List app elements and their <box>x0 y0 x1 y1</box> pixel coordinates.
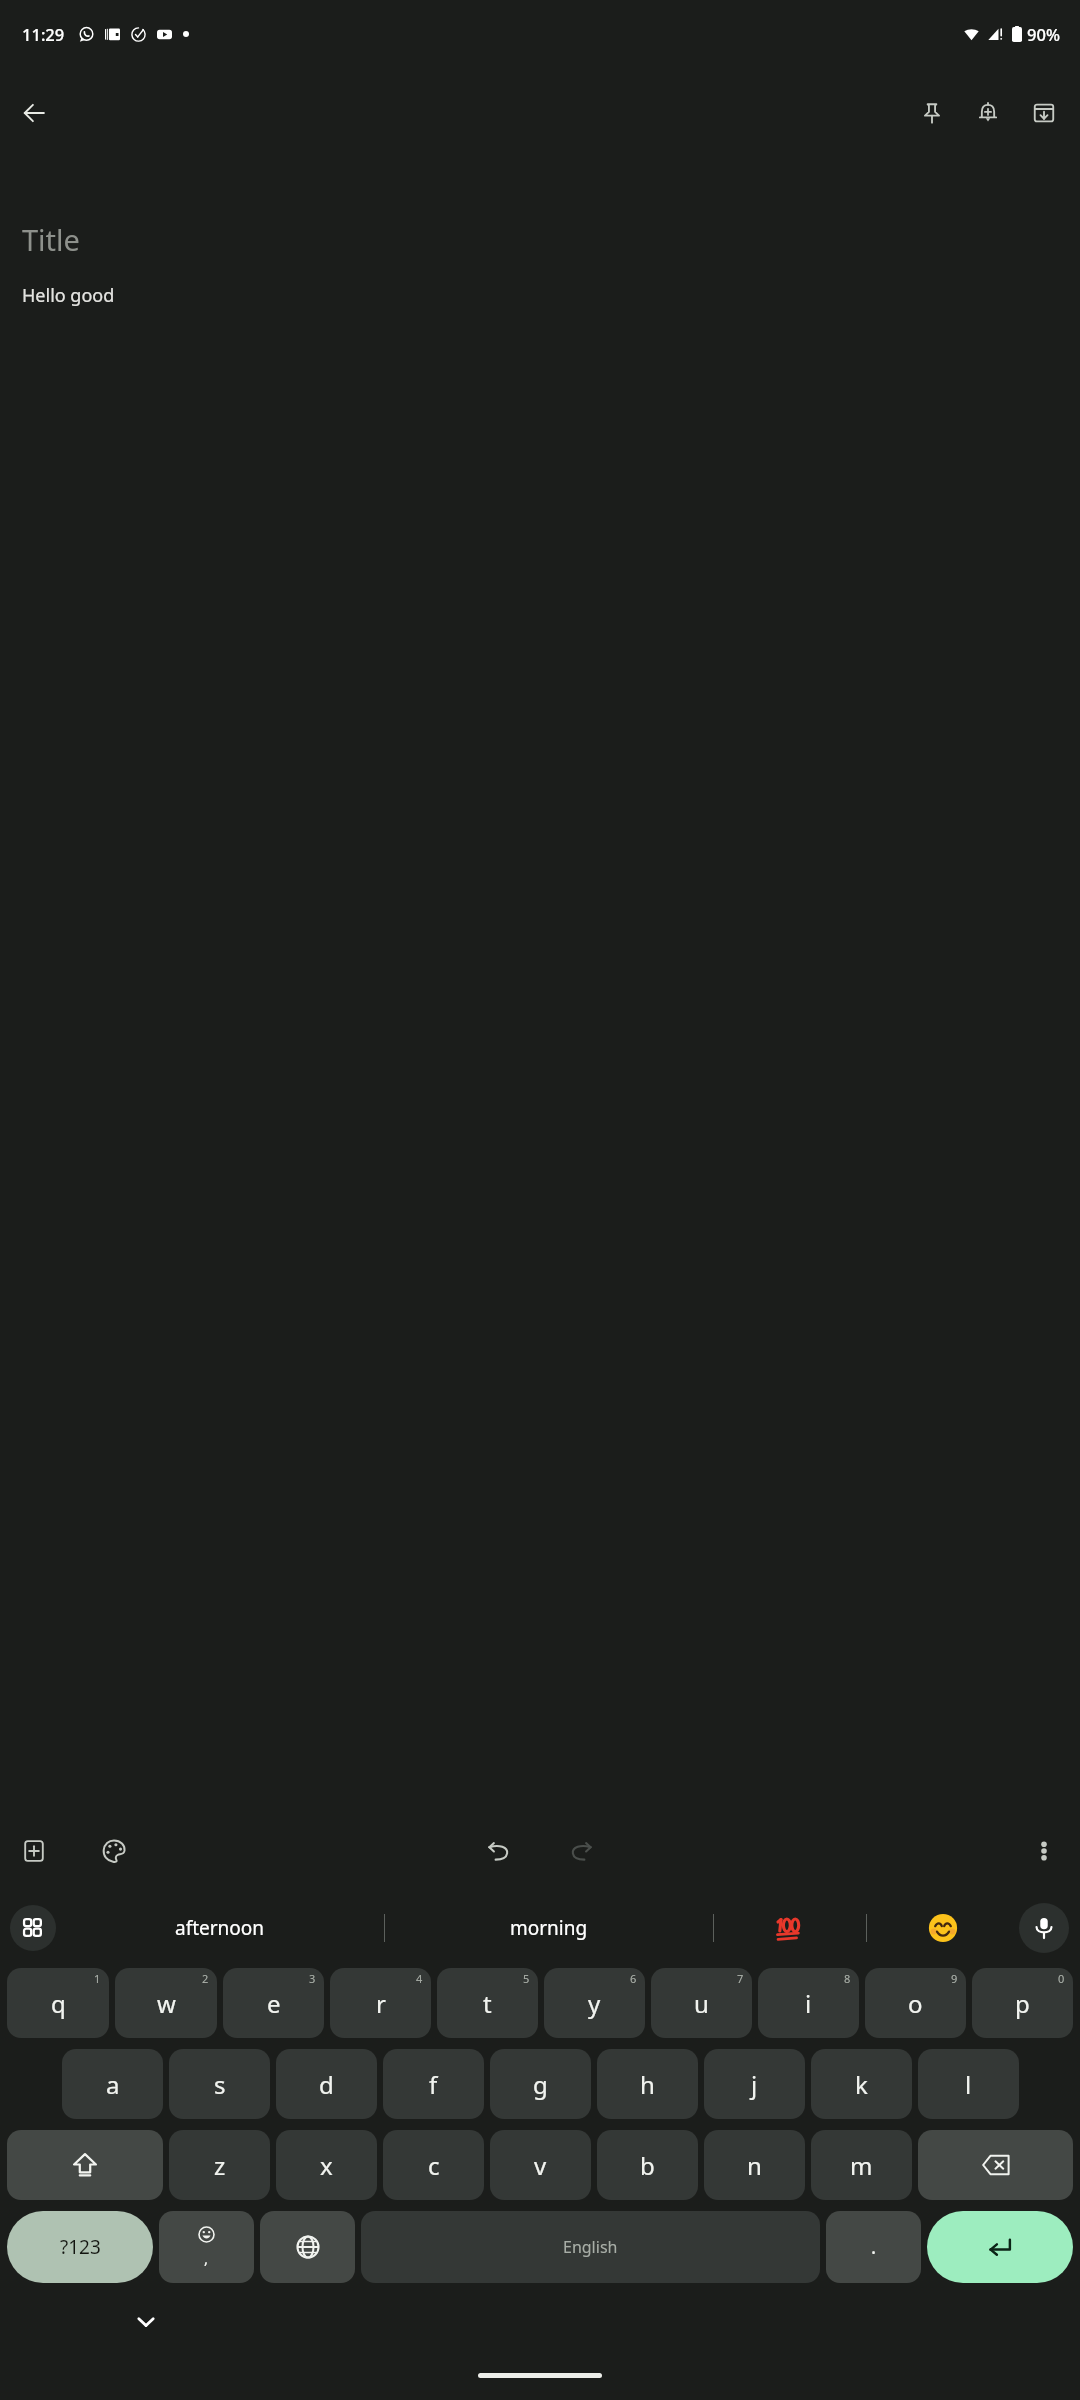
button[interactable]: r <box>330 1968 431 2038</box>
button[interactable]: Shift <box>7 2130 163 2200</box>
button[interactable]: Change language <box>260 2211 355 2283</box>
staticText: afternoon <box>175 1915 265 1941</box>
staticText: k <box>855 2068 868 2101</box>
staticText: Hello good <box>22 283 115 308</box>
button[interactable]: Backspace <box>918 2130 1073 2200</box>
staticText: 9 <box>951 1971 958 1986</box>
button[interactable]: o <box>865 1968 966 2038</box>
staticText: 90% <box>1027 23 1060 45</box>
staticText: n <box>747 2149 762 2182</box>
button[interactable]: d <box>276 2049 377 2119</box>
staticText: p <box>1015 1987 1030 2020</box>
button[interactable]: Enter <box>927 2211 1073 2283</box>
button[interactable]: h <box>597 2049 698 2119</box>
staticText: l <box>965 2068 972 2101</box>
button[interactable]: Add <box>6 1823 62 1879</box>
button[interactable]: q <box>7 1968 109 2038</box>
staticText: d <box>319 2068 334 2101</box>
button[interactable]: afternoon <box>56 1889 384 1967</box>
button[interactable]: Emoji and comma <box>159 2211 254 2283</box>
staticText: w <box>157 1987 176 2020</box>
button[interactable]: Change colour <box>86 1823 142 1879</box>
staticText: z <box>214 2149 226 2182</box>
button[interactable]: English <box>361 2211 820 2283</box>
staticText: i <box>805 1987 812 2020</box>
staticText: 6 <box>630 1971 637 1986</box>
staticText: ?123 <box>60 2234 101 2260</box>
button[interactable]: z <box>169 2130 270 2200</box>
staticText: r <box>376 1987 386 2020</box>
button[interactable]: y <box>544 1968 645 2038</box>
button[interactable]: Voice input <box>1019 1903 1069 1953</box>
button[interactable]: a <box>62 2049 163 2119</box>
staticText: s <box>214 2068 226 2101</box>
staticText: j <box>751 2068 758 2101</box>
button[interactable]: Hide keyboard <box>124 2300 168 2344</box>
staticText: y <box>588 1987 601 2020</box>
staticText: v <box>534 2149 547 2182</box>
staticText: 1 <box>94 1971 101 1986</box>
button[interactable]: c <box>383 2130 484 2200</box>
staticText: 8 <box>844 1971 851 1986</box>
button[interactable]: u <box>651 1968 752 2038</box>
staticText: x <box>320 2149 333 2182</box>
staticText: Title <box>22 220 80 259</box>
staticText: 5 <box>523 1971 530 1986</box>
staticText: morning <box>510 1915 588 1941</box>
button[interactable]: . <box>826 2211 921 2283</box>
staticText: t <box>483 1987 492 2020</box>
staticText: e <box>267 1987 281 2020</box>
button[interactable]: k <box>811 2049 912 2119</box>
staticText: . <box>871 2234 877 2260</box>
staticText: 4 <box>416 1971 423 1986</box>
staticText: 11:29 <box>22 23 65 45</box>
button[interactable]: g <box>490 2049 591 2119</box>
staticText: c <box>428 2149 440 2182</box>
button[interactable]: f <box>383 2049 484 2119</box>
staticText: 3 <box>309 1971 316 1986</box>
button[interactable]: Redo <box>554 1823 610 1879</box>
button[interactable]: Pin note <box>906 87 958 139</box>
button[interactable]: x <box>276 2130 377 2200</box>
staticText: 2 <box>202 1971 209 1986</box>
staticText: m <box>850 2149 873 2182</box>
button[interactable]: e <box>223 1968 324 2038</box>
button[interactable]: b <box>597 2130 698 2200</box>
button[interactable]: w <box>115 1968 217 2038</box>
button[interactable]: Title <box>22 158 1058 1813</box>
staticText: English <box>563 2236 618 2258</box>
button[interactable]: ?123 <box>7 2211 153 2283</box>
button[interactable]: Undo <box>470 1823 526 1879</box>
staticText: , <box>204 2248 209 2268</box>
button[interactable]: t <box>437 1968 538 2038</box>
button[interactable]: morning <box>385 1889 713 1967</box>
button[interactable]: i <box>758 1968 859 2038</box>
button[interactable]: s <box>169 2049 270 2119</box>
button[interactable]: m <box>811 2130 912 2200</box>
button[interactable]: l <box>918 2049 1019 2119</box>
staticText: u <box>694 1987 709 2020</box>
staticText: a <box>106 2068 120 2101</box>
staticText: 7 <box>737 1971 744 1986</box>
staticText: 0 <box>1058 1971 1065 1986</box>
staticText: o <box>908 1987 923 2020</box>
button[interactable]: j <box>704 2049 805 2119</box>
button[interactable]: More options <box>1016 1823 1072 1879</box>
staticText: b <box>640 2149 655 2182</box>
button[interactable]: Add reminder <box>962 87 1014 139</box>
button[interactable]: 100 emoji <box>714 1889 866 1967</box>
staticText: f <box>429 2068 438 2101</box>
button[interactable]: Toolbar <box>10 1905 56 1951</box>
button[interactable]: Archive <box>1018 87 1070 139</box>
staticText: h <box>640 2068 655 2101</box>
button[interactable]: n <box>704 2130 805 2200</box>
button[interactable]: v <box>490 2130 591 2200</box>
button[interactable]: p <box>972 1968 1073 2038</box>
button[interactable]: Back <box>8 87 60 139</box>
staticText: g <box>533 2068 548 2101</box>
button[interactable]: Smiling emoji <box>867 1889 1019 1967</box>
staticText: q <box>51 1987 66 2020</box>
